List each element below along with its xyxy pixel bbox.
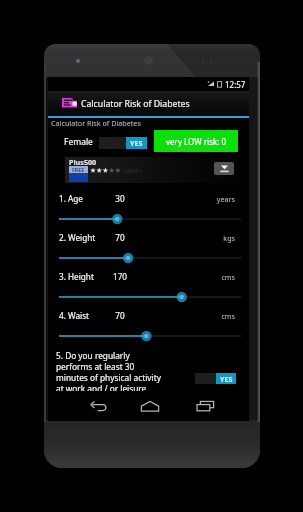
button[interactable] <box>48 289 249 305</box>
staticText: kgs <box>211 233 235 243</box>
staticText: 70 <box>108 310 132 321</box>
staticText: 2. Weight <box>59 232 96 243</box>
staticText: 1. Age <box>59 193 83 204</box>
button[interactable] <box>48 211 249 227</box>
staticText: 108631 <box>123 167 142 174</box>
staticText: 3. Height <box>59 271 94 282</box>
button[interactable]: YES <box>195 373 236 384</box>
staticText: 170 <box>108 271 132 282</box>
staticText: 12:57 <box>225 79 246 90</box>
staticText: FREE <box>72 166 85 173</box>
staticText: 4. Waist <box>59 310 90 321</box>
staticText: Calculator Risk of Diabetes <box>51 118 141 128</box>
button[interactable]: very LOW risk: 0 <box>154 130 238 152</box>
staticText: 30 <box>108 193 132 204</box>
staticText: Plus500 <box>69 157 97 167</box>
staticText: cms <box>211 272 235 282</box>
button[interactable]: Home <box>133 393 167 418</box>
button[interactable]: Back <box>81 393 115 418</box>
button[interactable] <box>48 328 249 344</box>
button[interactable]: YES <box>99 137 147 149</box>
staticText: very LOW risk: 0 <box>166 136 227 147</box>
staticText: 70 <box>108 232 132 243</box>
button[interactable]: Install <box>214 162 234 175</box>
staticText: YES <box>130 138 143 148</box>
staticText: Calculator Risk of Diabetes <box>81 98 190 110</box>
button[interactable]: Calculator Risk of Diabetes <box>48 91 249 116</box>
staticText: cms <box>211 311 235 321</box>
staticText: Female <box>64 136 93 148</box>
staticText: YES <box>220 374 233 384</box>
button[interactable]: Recents <box>189 393 223 418</box>
button[interactable] <box>48 250 249 266</box>
staticText: years <box>211 194 235 204</box>
staticText: 5. Do you regularly performs at least 30… <box>56 350 161 391</box>
button[interactable]: Plus500 <box>65 157 249 183</box>
